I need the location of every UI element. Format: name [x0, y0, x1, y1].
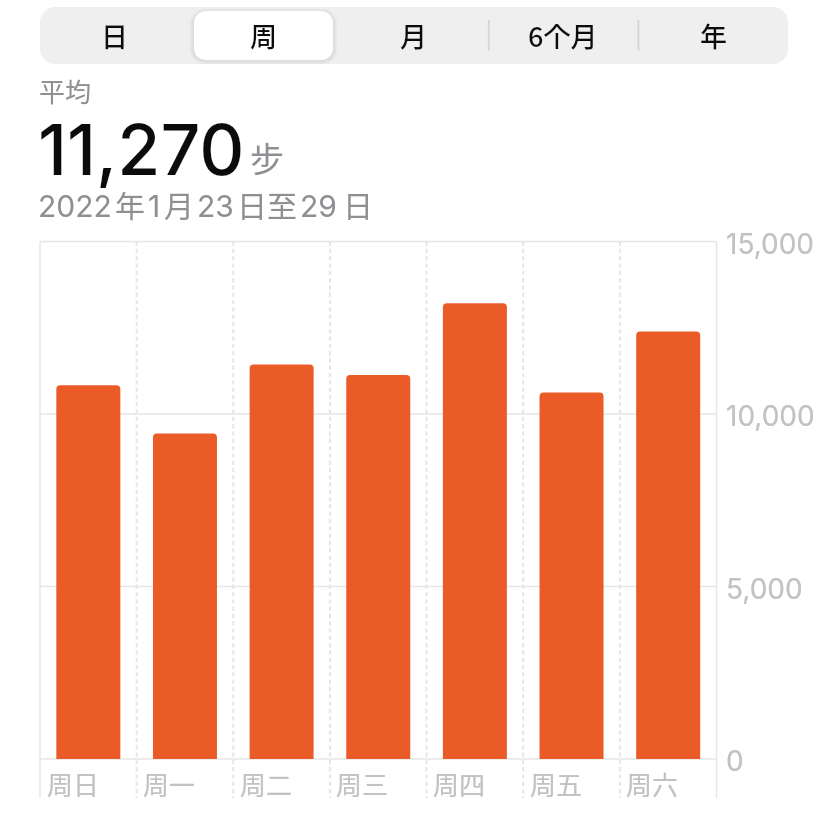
- other: 本周每日步数柱状图: [0, 0, 828, 825]
- staticText: 周一: [143, 765, 196, 803]
- staticText: 6个月: [528, 16, 598, 55]
- staticText: 0: [726, 744, 744, 778]
- staticText: 周四: [433, 765, 486, 803]
- staticText: 周六: [626, 765, 679, 803]
- button[interactable]: 日: [40, 7, 189, 64]
- button[interactable]: 年: [638, 7, 788, 64]
- staticText: 10,000: [726, 399, 815, 433]
- staticText: 周三: [336, 765, 389, 803]
- staticText: 周二: [240, 765, 293, 803]
- button[interactable]: 月: [338, 7, 488, 64]
- button[interactable]: 6个月: [488, 7, 638, 64]
- staticText: 1: [148, 188, 161, 224]
- staticText: 周日: [47, 765, 100, 803]
- staticText: 29: [300, 188, 337, 224]
- staticText: 日: [343, 182, 373, 225]
- staticText: 11,270: [38, 107, 245, 192]
- staticText: 年: [115, 182, 145, 225]
- staticText: 月: [400, 16, 427, 55]
- staticText: 步: [250, 133, 284, 182]
- staticText: 日至: [237, 182, 297, 225]
- staticText: 5,000: [726, 572, 803, 606]
- staticText: 年: [700, 16, 727, 55]
- staticText: 日: [101, 16, 128, 55]
- staticText: 2022: [38, 188, 112, 224]
- staticText: 23: [197, 188, 234, 224]
- staticText: 平均: [39, 72, 92, 110]
- staticText: 15,000: [726, 227, 815, 261]
- button[interactable]: 周: [189, 7, 338, 64]
- staticText: 月: [164, 182, 194, 225]
- staticText: 周: [250, 16, 277, 55]
- staticText: 周五: [530, 765, 583, 803]
